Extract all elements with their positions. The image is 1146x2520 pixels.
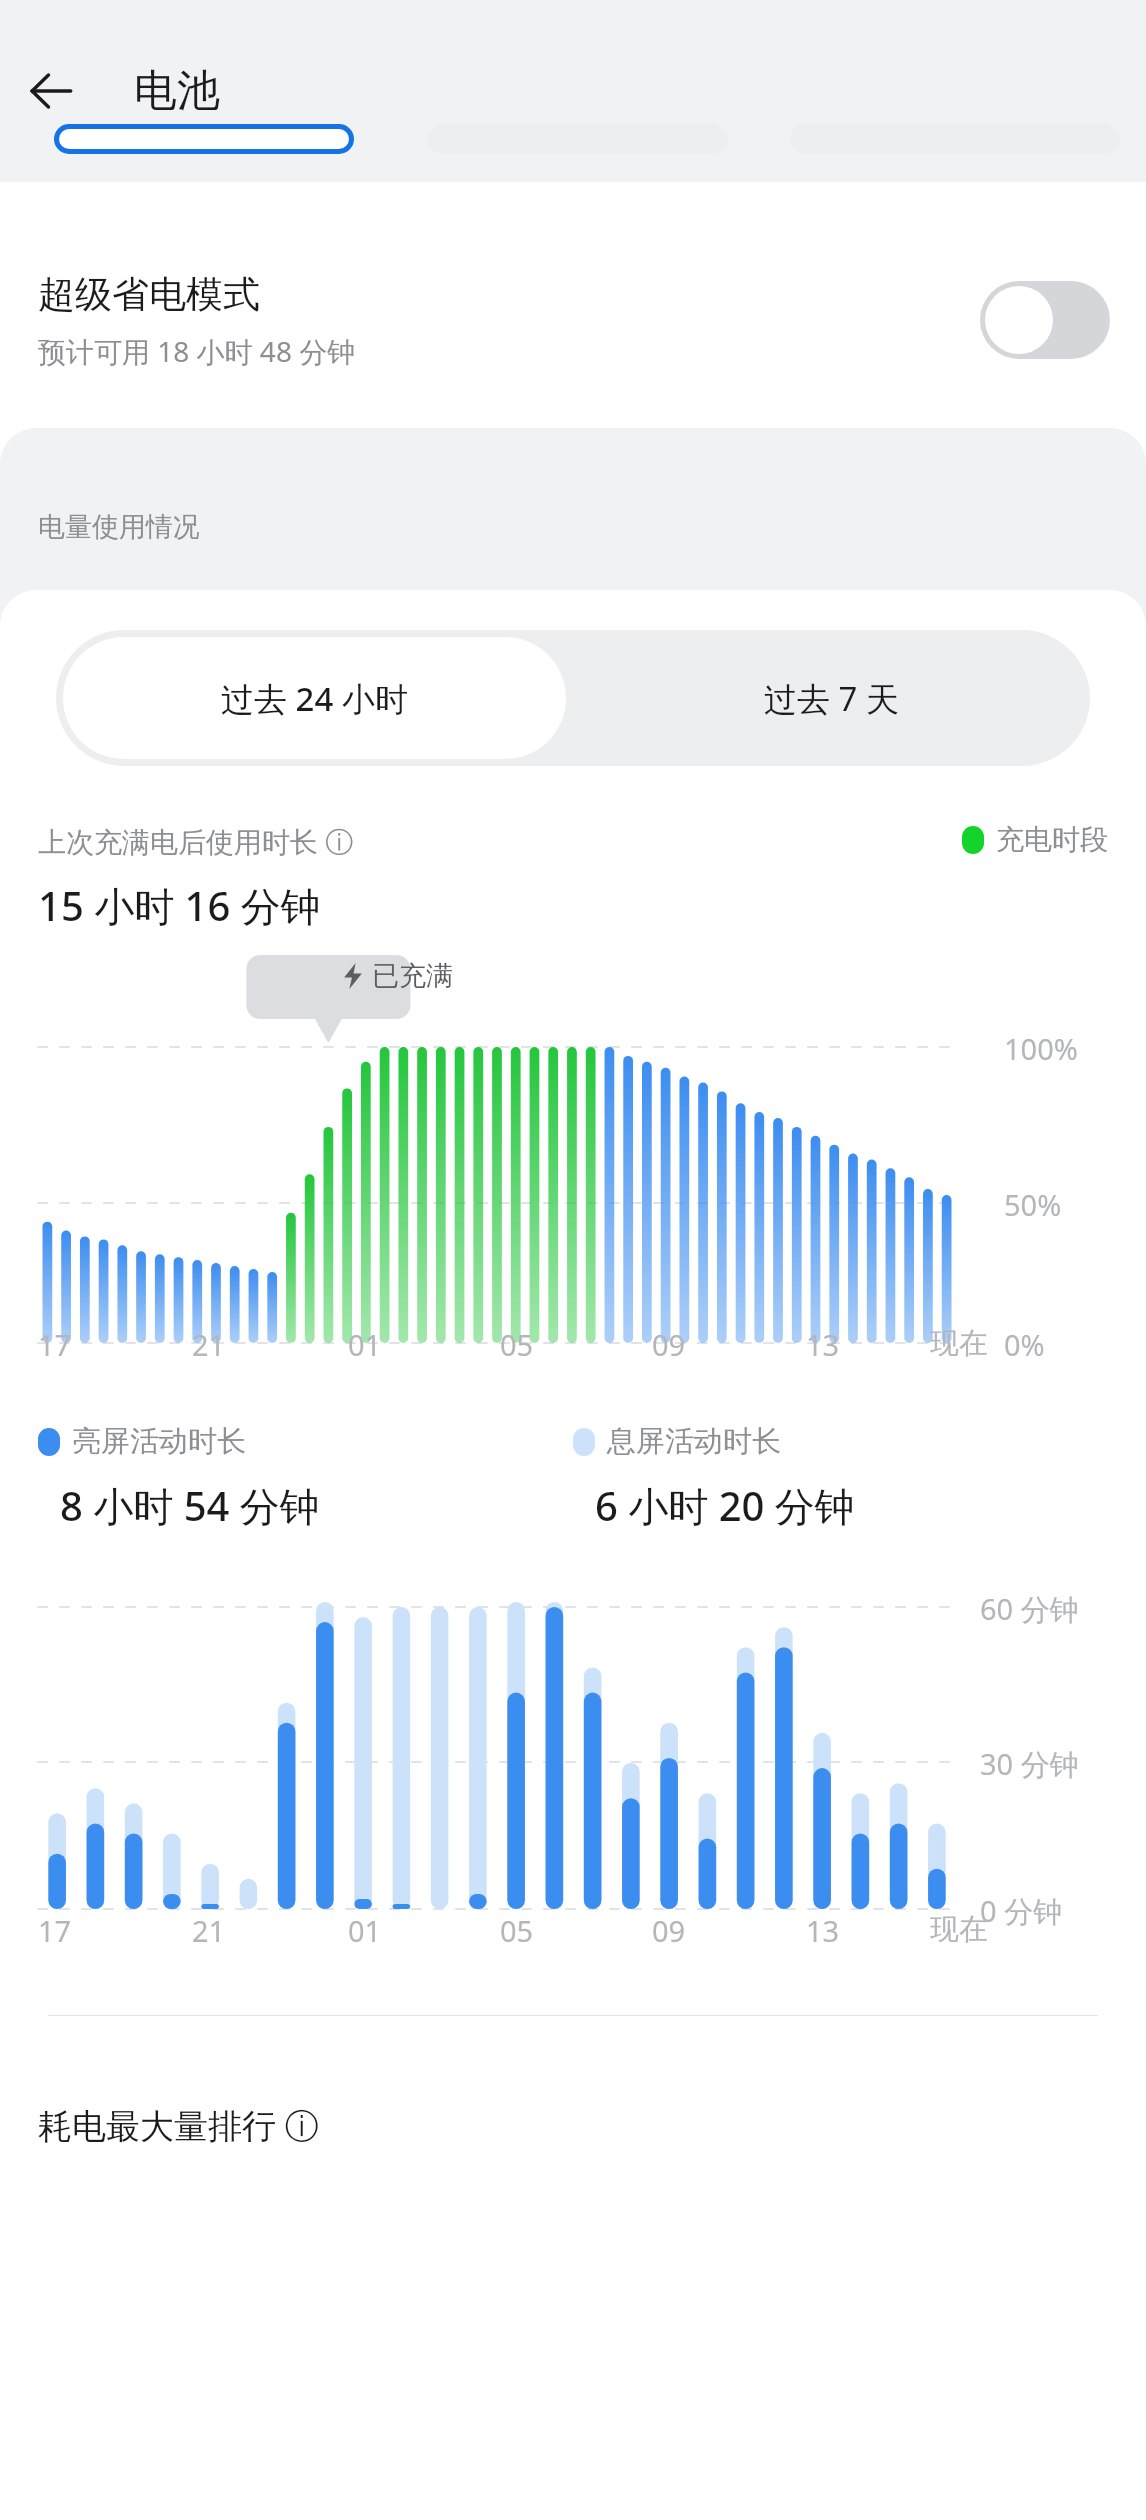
button[interactable]: 超级省电模式 [980,281,1110,359]
button[interactable] [54,124,354,154]
staticText: 8 小时 54 分钟 [60,1478,320,1533]
staticText: 21 [192,1325,226,1364]
staticText: 05 [500,1325,534,1364]
staticText: 超级省电模式 [38,271,260,318]
staticText: 09 [652,1911,686,1950]
staticText: 60 分钟 [980,1589,1079,1629]
staticText: 13 [806,1911,840,1950]
staticText: 30 分钟 [980,1744,1079,1784]
staticText: 现在 [930,1325,988,1362]
staticText: 13 [806,1325,840,1364]
staticText: 50% [1004,1185,1062,1224]
button[interactable]: 超级省电模式 [38,212,1110,428]
staticText: 21 [192,1911,226,1950]
staticText: 17 [38,1325,72,1364]
staticText: 上次充满电后使用时长 ⓘ [38,822,354,860]
button[interactable]: Back [14,54,88,128]
staticText: 01 [348,1325,382,1364]
staticText: 过去 24 小时 [221,676,408,721]
staticText: 17 [38,1911,72,1950]
staticText: 亮屏活动时长 [72,1423,246,1460]
staticText: 过去 7 天 [764,676,900,721]
staticText: 09 [652,1325,686,1364]
staticText: 01 [348,1911,382,1950]
staticText: 15 小时 16 分钟 [38,878,321,933]
staticText: 电量使用情况 [38,510,200,544]
button[interactable]: 过去 24 小时 [63,637,566,759]
staticText: 电池 [134,64,220,118]
staticText: 预计可用 18 小时 48 分钟 [38,332,356,370]
button[interactable]: 过去 7 天 [573,630,1090,766]
staticText: 息屏活动时长 [607,1423,781,1460]
staticText: 耗电最大量排行 ⓘ [38,2102,319,2148]
staticText: 0% [1004,1325,1045,1364]
staticText: 0 分钟 [980,1891,1063,1931]
staticText: 充电时段 [996,822,1108,857]
staticText: 05 [500,1911,534,1950]
staticText: 现在 [930,1911,988,1948]
staticText: 已充满 [372,959,453,993]
staticText: 100% [1004,1029,1078,1068]
staticText: 6 小时 20 分钟 [595,1478,855,1533]
